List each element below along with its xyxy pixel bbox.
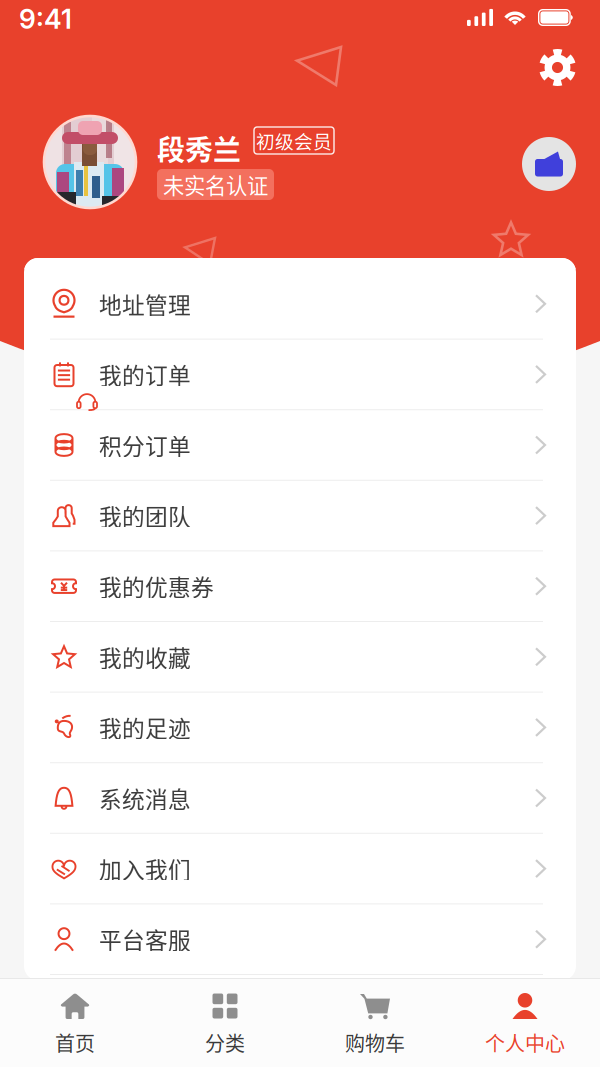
staticText: 9:41 xyxy=(19,3,72,35)
staticText: 初级会员 xyxy=(256,127,332,154)
staticText: 加入我们 xyxy=(99,852,191,885)
staticText: 平台客服 xyxy=(99,923,191,956)
staticText: 积分订单 xyxy=(99,429,191,461)
button[interactable]: Settings xyxy=(539,49,576,86)
staticText: 个人中心 xyxy=(485,1028,565,1057)
staticText: 我的团队 xyxy=(99,499,191,532)
button[interactable]: 系统消息 xyxy=(24,763,576,834)
button[interactable]: 个人中心 xyxy=(450,979,600,1067)
staticText: 购物车 xyxy=(345,1028,405,1057)
staticText: 我的足迹 xyxy=(99,711,191,744)
staticText: 未实名认证 xyxy=(163,169,268,200)
button[interactable]: 我的足迹 xyxy=(24,693,576,763)
button[interactable]: 分类 xyxy=(150,979,300,1067)
button[interactable]: Wallet xyxy=(522,137,576,191)
button[interactable]: 首页 xyxy=(0,979,150,1067)
button[interactable]: 我的优惠券 xyxy=(24,551,576,622)
staticText: 首页 xyxy=(55,1028,95,1057)
button[interactable]: 平台客服 xyxy=(24,904,576,975)
button[interactable]: 我的订单 xyxy=(24,340,576,410)
button[interactable]: 我的收藏 xyxy=(24,622,576,693)
button[interactable]: 我的团队 xyxy=(24,481,576,551)
button[interactable]: 地址管理 xyxy=(24,269,576,340)
staticText: 分类 xyxy=(205,1028,245,1057)
staticText: 我的收藏 xyxy=(99,640,191,673)
staticText: 我的优惠券 xyxy=(99,570,214,603)
staticText: 系统消息 xyxy=(99,782,191,814)
button[interactable]: 积分订单 xyxy=(24,410,576,481)
staticText: 地址管理 xyxy=(99,287,191,320)
staticText: 我的订单 xyxy=(99,358,191,391)
staticText: 段秀兰 xyxy=(157,128,241,168)
button[interactable]: 加入我们 xyxy=(24,834,576,904)
button[interactable]: 未实名认证 xyxy=(157,169,274,200)
button[interactable]: 购物车 xyxy=(300,979,450,1067)
